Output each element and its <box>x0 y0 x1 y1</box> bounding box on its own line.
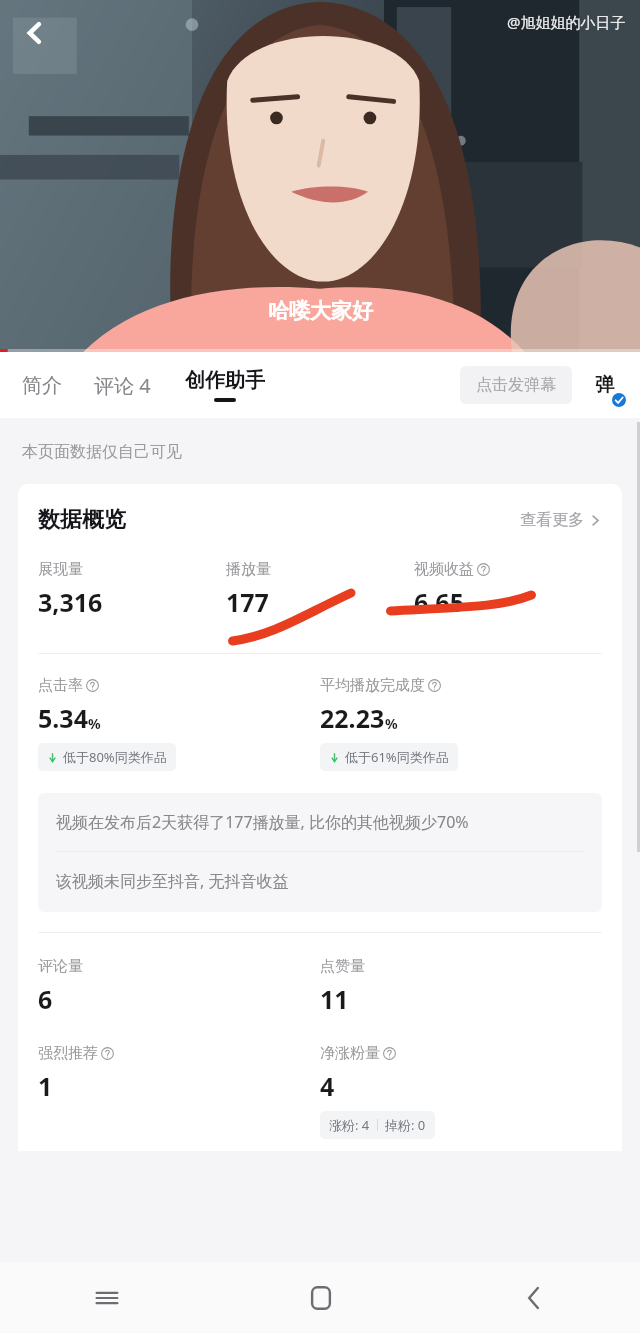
staticText: 展现量 <box>38 560 83 579</box>
staticText: 哈喽大家好 <box>268 298 373 324</box>
staticText: 本页面数据仅自己可见 <box>22 442 182 462</box>
staticText: % <box>88 714 101 733</box>
button[interactable]: 创作助手 <box>185 368 265 402</box>
button[interactable]: 涨粉: 4 <box>320 1111 435 1139</box>
staticText: 创作助手 <box>185 368 265 393</box>
staticText: 评论 4 <box>94 372 151 399</box>
button[interactable]: 点击发弹幕 <box>460 366 572 404</box>
button[interactable]: Danmaku settings <box>582 363 626 407</box>
staticText: 掉粉: 0 <box>385 1116 426 1134</box>
staticText: 弹 <box>595 373 614 397</box>
staticText: 点击率 <box>38 676 83 695</box>
button[interactable]: 低于61%同类作品 <box>329 748 449 766</box>
button[interactable]: Home <box>214 1262 427 1333</box>
button[interactable]: 评论 4 <box>94 372 151 399</box>
staticText: 1 <box>38 1069 53 1103</box>
button[interactable]: Back <box>427 1262 640 1333</box>
staticText: 查看更多 <box>520 510 584 530</box>
staticText: 6.65 <box>414 585 464 619</box>
staticText: 视频在发布后2天获得了177播放量, 比你的其他视频少70% <box>56 811 469 833</box>
staticText: 5.34 <box>38 701 88 735</box>
staticText: 22.23 <box>320 701 385 735</box>
staticText: 数据概览 <box>38 506 126 534</box>
button[interactable]: Back <box>12 10 58 56</box>
staticText: @旭姐姐的小日子 <box>507 12 626 32</box>
staticText: 涨粉: 4 <box>329 1116 370 1134</box>
staticText: 平均播放完成度 <box>320 676 425 695</box>
staticText: 低于61%同类作品 <box>345 748 449 766</box>
staticText: % <box>385 714 398 733</box>
staticText: 11 <box>320 982 349 1016</box>
staticText: 评论量 <box>38 957 83 976</box>
button[interactable]: Recent apps <box>0 1262 214 1333</box>
staticText: 177 <box>226 585 269 619</box>
staticText: 视频收益 <box>414 560 474 579</box>
button[interactable]: 低于80%同类作品 <box>47 748 167 766</box>
staticText: 强烈推荐 <box>38 1044 98 1063</box>
staticText: 播放量 <box>226 560 271 579</box>
staticText: 4 <box>320 1069 335 1103</box>
staticText: 3,316 <box>38 585 103 619</box>
button[interactable]: 数据概览 <box>38 506 602 534</box>
button[interactable]: 简介 <box>22 373 62 398</box>
staticText: 点赞量 <box>320 957 365 976</box>
staticText: 6 <box>38 982 53 1016</box>
staticText: 净涨粉量 <box>320 1044 380 1063</box>
staticText: 该视频未同步至抖音, 无抖音收益 <box>56 870 289 892</box>
staticText: 简介 <box>22 373 62 398</box>
staticText: 低于80%同类作品 <box>63 748 167 766</box>
staticText: 点击发弹幕 <box>476 375 556 395</box>
